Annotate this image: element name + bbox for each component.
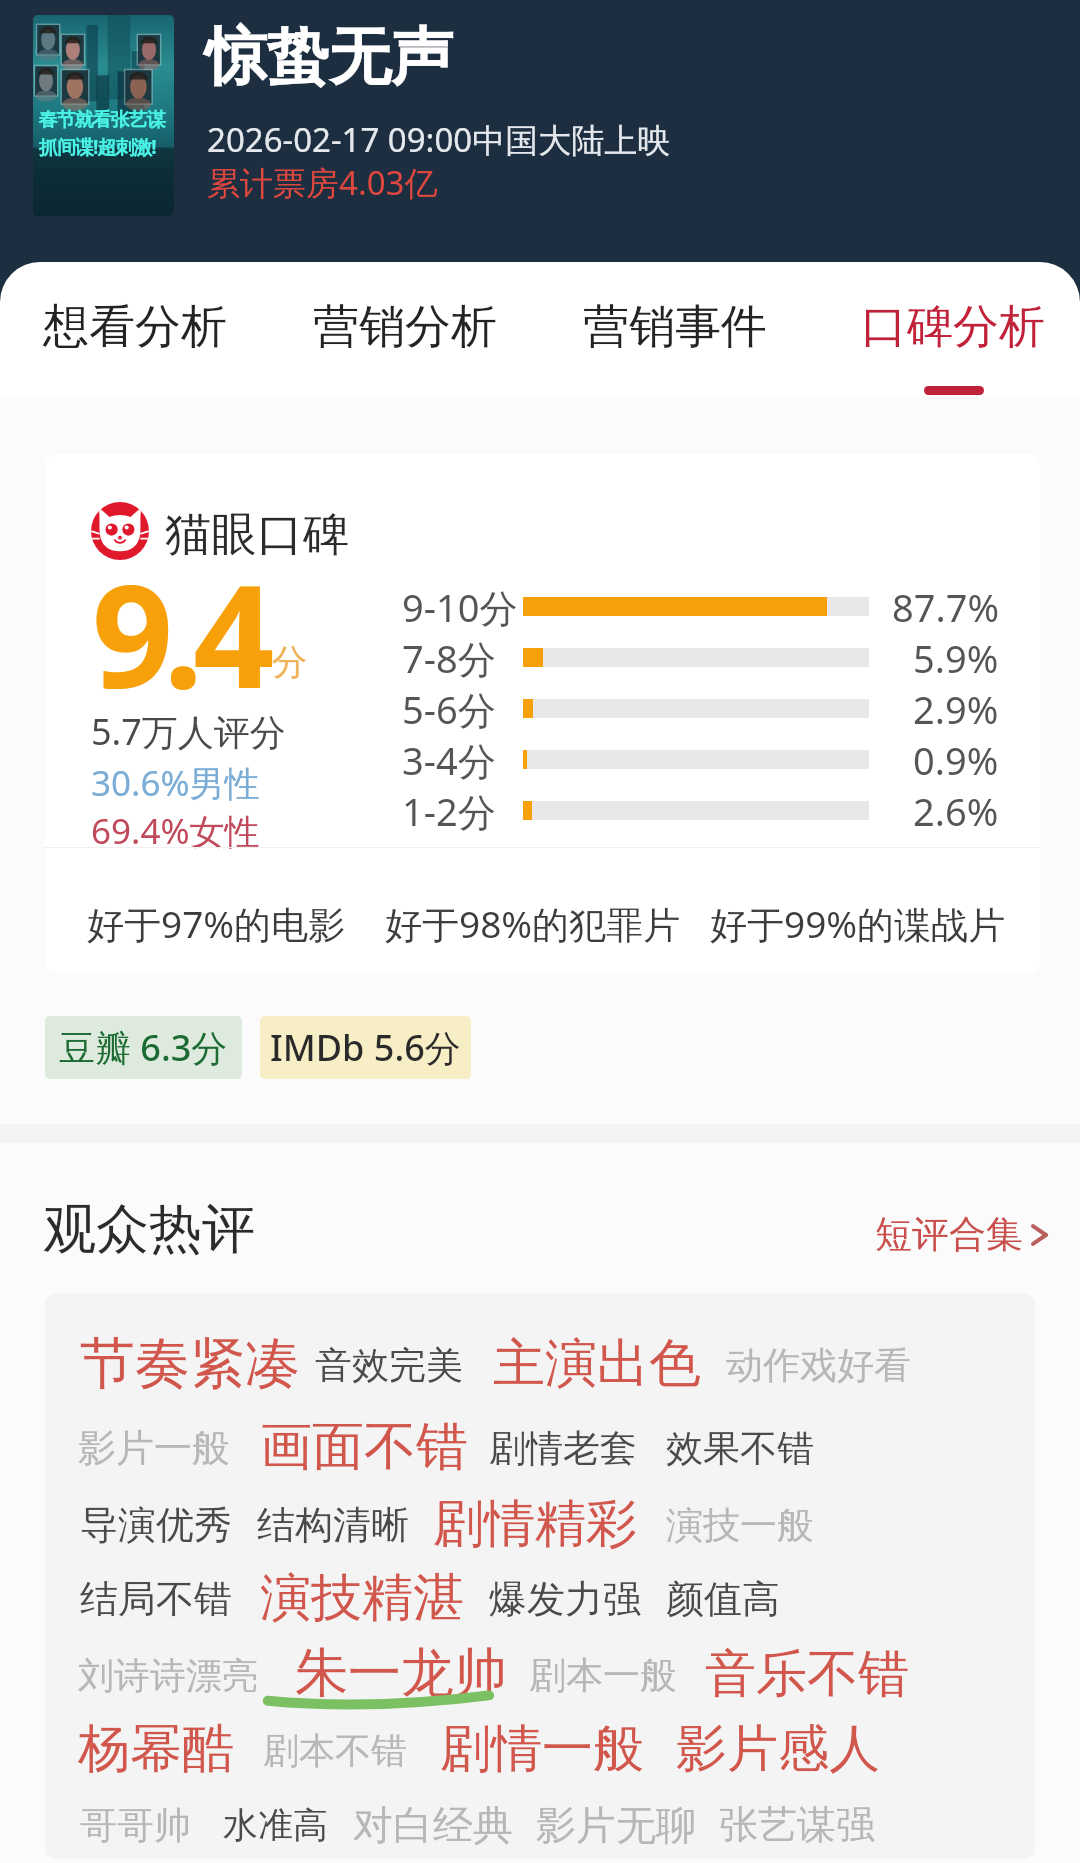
- staticText: 口碑分析: [861, 298, 1045, 356]
- button[interactable]: 演技一般: [666, 1502, 814, 1549]
- button[interactable]: 影片感人: [676, 1717, 880, 1781]
- staticText: IMDb 5.6分: [270, 1023, 461, 1072]
- staticText: 水准高: [223, 1803, 328, 1847]
- staticText: 颜值高: [666, 1575, 780, 1623]
- button[interactable]: 杨幂酷: [78, 1716, 234, 1782]
- button[interactable]: 剧情一般: [440, 1717, 644, 1781]
- button[interactable]: 哥哥帅: [80, 1802, 191, 1849]
- staticText: 惊蛰无声: [205, 18, 453, 96]
- button[interactable]: 电影海报 惊蛰无声: [33, 15, 174, 216]
- button[interactable]: 结局不错: [80, 1575, 232, 1623]
- button[interactable]: 张艺谋强: [719, 1800, 875, 1849]
- staticText: 豆瓣 6.3分: [59, 1023, 228, 1072]
- staticText: 抓间谍!超刺激!: [39, 134, 156, 160]
- button[interactable]: 剧情精彩: [433, 1492, 637, 1556]
- staticText: 导演优秀: [80, 1501, 232, 1549]
- staticText: 3-4分: [402, 734, 496, 785]
- staticText: 5.9%: [913, 632, 999, 683]
- button[interactable]: 画面不错: [260, 1414, 468, 1480]
- button[interactable]: 影片无聊: [536, 1800, 696, 1850]
- staticText: 猫眼口碑: [165, 506, 349, 564]
- staticText: 剧情一般: [440, 1717, 644, 1781]
- staticText: 分: [272, 640, 307, 684]
- staticText: 69.4%女性: [91, 807, 260, 855]
- staticText: 节奏紧凑: [80, 1329, 300, 1398]
- staticText: 想看分析: [43, 298, 227, 356]
- button[interactable]: 结构清晰: [257, 1501, 409, 1549]
- button[interactable]: 导演优秀: [80, 1501, 232, 1549]
- button[interactable]: 剧本一般: [529, 1652, 677, 1699]
- staticText: 营销事件: [583, 298, 767, 356]
- button[interactable]: 剧情老套: [489, 1425, 637, 1472]
- staticText: 1-2分: [402, 785, 496, 836]
- staticText: 好于98%的犯罪片: [385, 898, 681, 949]
- staticText: 剧本不错: [263, 1728, 407, 1773]
- button[interactable]: 口碑分析: [810, 262, 1080, 396]
- staticText: 哥哥帅: [80, 1802, 191, 1849]
- staticText: 演技精湛: [260, 1566, 464, 1630]
- button[interactable]: 动作戏好看: [726, 1342, 911, 1389]
- button[interactable]: 主演出色: [493, 1331, 701, 1397]
- staticText: 累计票房4.03亿: [207, 160, 438, 205]
- staticText: 动作戏好看: [726, 1342, 911, 1389]
- staticText: 短评合集: [875, 1211, 1023, 1258]
- staticText: 营销分析: [313, 298, 497, 356]
- staticText: 9-10分: [402, 581, 518, 632]
- staticText: 张艺谋强: [719, 1800, 875, 1849]
- button[interactable]: 音效完美: [315, 1342, 463, 1389]
- staticText: 2026-02-17 09:00中国大陆上映: [207, 117, 671, 162]
- staticText: 主演出色: [493, 1331, 701, 1397]
- staticText: 效果不错: [666, 1425, 814, 1472]
- staticText: 5-6分: [402, 683, 496, 734]
- button[interactable]: 影片一般: [78, 1424, 230, 1472]
- staticText: 好于99%的谍战片: [710, 898, 1006, 949]
- button[interactable]: 颜值高: [666, 1575, 780, 1623]
- staticText: 87.7%: [892, 581, 999, 632]
- staticText: 朱一龙帅: [295, 1640, 507, 1707]
- staticText: 2.6%: [913, 785, 999, 836]
- button[interactable]: 营销分析: [270, 262, 540, 396]
- button[interactable]: 营销事件: [540, 262, 810, 396]
- staticText: 9.4: [92, 536, 265, 729]
- staticText: 5.7万人评分: [91, 707, 286, 756]
- button[interactable]: 想看分析: [0, 262, 270, 396]
- staticText: 剧情精彩: [433, 1492, 637, 1556]
- staticText: 30.6%男性: [91, 759, 260, 807]
- staticText: 爆发力强: [489, 1575, 641, 1623]
- button[interactable]: 水准高: [223, 1803, 328, 1847]
- button[interactable]: 节奏紧凑: [80, 1329, 300, 1398]
- staticText: 刘诗诗漂亮: [78, 1653, 258, 1698]
- staticText: 结局不错: [80, 1575, 232, 1623]
- staticText: 0.9%: [913, 734, 999, 785]
- button[interactable]: 豆瓣 6.3分: [45, 1016, 242, 1079]
- staticText: 春节就看张艺谋: [39, 108, 165, 132]
- staticText: 7-8分: [402, 632, 496, 683]
- staticText: 剧情老套: [489, 1425, 637, 1472]
- staticText: 观众热评: [43, 1196, 255, 1263]
- staticText: 对白经典: [353, 1800, 513, 1850]
- button[interactable]: IMDb 5.6分: [260, 1016, 471, 1079]
- staticText: 演技一般: [666, 1502, 814, 1549]
- button[interactable]: 爆发力强: [489, 1575, 641, 1623]
- button[interactable]: 刘诗诗漂亮: [78, 1653, 258, 1698]
- staticText: 影片一般: [78, 1424, 230, 1472]
- staticText: 音效完美: [315, 1342, 463, 1389]
- staticText: 画面不错: [260, 1414, 468, 1480]
- button[interactable]: 对白经典: [353, 1800, 513, 1850]
- staticText: 杨幂酷: [78, 1716, 234, 1782]
- staticText: 结构清晰: [257, 1501, 409, 1549]
- button[interactable]: 剧本不错: [263, 1728, 407, 1773]
- staticText: 好于97%的电影: [87, 898, 346, 949]
- staticText: 影片感人: [676, 1717, 880, 1781]
- staticText: 影片无聊: [536, 1800, 696, 1850]
- button[interactable]: 短评合集: [875, 1211, 1050, 1258]
- staticText: 音乐不错: [705, 1642, 909, 1706]
- button[interactable]: 音乐不错: [705, 1642, 909, 1706]
- staticText: 2.9%: [913, 683, 999, 734]
- button[interactable]: 效果不错: [666, 1425, 814, 1472]
- staticText: 剧本一般: [529, 1652, 677, 1699]
- button[interactable]: 演技精湛: [260, 1566, 464, 1630]
- button[interactable]: 朱一龙帅: [295, 1640, 507, 1707]
